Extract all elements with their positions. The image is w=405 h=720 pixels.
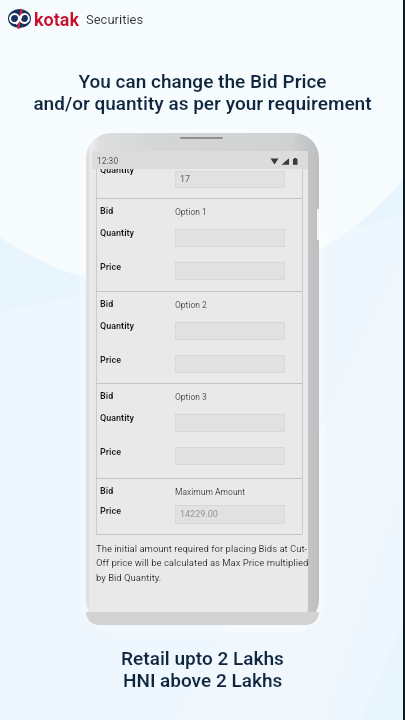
button[interactable]: 14229.00 xyxy=(175,505,285,524)
staticText: HNI above 2 Lakhs xyxy=(123,669,283,691)
staticText: Securities xyxy=(86,12,144,27)
staticText: Price xyxy=(100,447,122,458)
button[interactable]: 17 xyxy=(175,171,285,188)
staticText: 12:30 xyxy=(97,156,119,166)
staticText: Bid xyxy=(100,486,114,497)
staticText: Bid xyxy=(100,206,114,217)
staticText: Option 3 xyxy=(175,392,207,402)
staticText: Bid xyxy=(100,391,114,402)
staticText: Price xyxy=(100,262,122,273)
staticText: You can change the Bid Price xyxy=(78,70,327,92)
staticText: 14229.00 xyxy=(180,509,218,520)
staticText: kotak xyxy=(34,9,80,30)
staticText: 17 xyxy=(180,174,191,185)
staticText: Quantity xyxy=(100,228,135,239)
staticText: Quantity xyxy=(100,413,135,424)
staticText: Price xyxy=(100,506,122,517)
staticText: Retail upto 2 Lakhs xyxy=(121,647,284,669)
staticText: Bid xyxy=(100,299,114,310)
staticText: Quantity xyxy=(100,165,135,176)
other: Status icons xyxy=(270,158,300,167)
staticText: Maximum Amount xyxy=(175,487,246,497)
staticText: Option 2 xyxy=(175,300,207,310)
staticText: and/or quantity as per your requirement xyxy=(33,92,372,114)
staticText: Quantity xyxy=(100,321,135,332)
staticText: The initial amount required for placing … xyxy=(96,543,308,584)
button[interactable]: kotak xyxy=(8,8,148,30)
staticText: Price xyxy=(100,355,122,366)
staticText: Option 1 xyxy=(175,207,207,217)
